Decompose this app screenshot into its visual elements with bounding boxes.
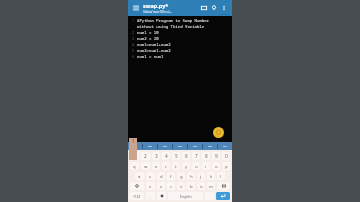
button[interactable]: l xyxy=(217,172,225,180)
button[interactable]: v xyxy=(177,182,185,190)
staticText: 1 xyxy=(132,18,135,23)
button[interactable] xyxy=(203,142,217,150)
staticText: num1 = 10 xyxy=(137,30,159,35)
button[interactable]: x xyxy=(157,182,165,190)
staticText: , xyxy=(150,193,152,199)
button[interactable]: h xyxy=(187,172,195,180)
button[interactable]: u xyxy=(192,162,200,170)
button[interactable] xyxy=(158,142,172,150)
staticText: p xyxy=(225,163,228,169)
staticText: 3 xyxy=(132,36,135,41)
button[interactable]: swap.py* xyxy=(143,2,199,14)
staticText: k xyxy=(210,173,213,179)
button[interactable]: p xyxy=(222,162,230,170)
staticText: without using Third Variable xyxy=(137,24,205,29)
button[interactable]: Run program xyxy=(213,127,224,138)
staticText: 5 xyxy=(175,153,178,160)
button[interactable]: w xyxy=(141,162,150,170)
button[interactable]: m xyxy=(207,182,215,190)
button[interactable]: ?123 xyxy=(130,192,144,200)
staticText: num1 = num1 xyxy=(137,54,164,59)
button[interactable]: 2 xyxy=(141,152,150,160)
staticText: q xyxy=(133,163,136,169)
button[interactable]: y xyxy=(182,162,190,170)
staticText: /data/user/0/ru.i... xyxy=(143,9,173,14)
staticText: i xyxy=(205,163,207,169)
staticText: 8 xyxy=(205,153,208,160)
button[interactable]: Open navigation menu xyxy=(131,3,141,13)
staticText: 3 xyxy=(155,153,158,160)
button[interactable]: Backspace xyxy=(217,182,230,190)
staticText: w xyxy=(144,163,148,169)
staticText: a xyxy=(138,173,141,179)
staticText: 1 xyxy=(132,138,135,145)
button[interactable]: g xyxy=(177,172,185,180)
button[interactable]: f xyxy=(167,172,175,180)
button[interactable]: b xyxy=(187,182,195,190)
button[interactable]: z xyxy=(146,182,155,190)
staticText: swap.py* xyxy=(143,2,169,9)
button[interactable]: n xyxy=(197,182,205,190)
button[interactable]: r xyxy=(162,162,170,170)
button[interactable]: t xyxy=(172,162,180,170)
button[interactable] xyxy=(188,142,202,150)
staticText: 6 xyxy=(185,153,188,160)
button[interactable] xyxy=(173,142,187,150)
button[interactable]: 7 xyxy=(192,152,200,160)
button[interactable]: 1 xyxy=(130,152,139,160)
staticText: s xyxy=(149,173,152,179)
staticText: 0 xyxy=(225,153,228,160)
button[interactable]: Save file xyxy=(199,3,209,13)
staticText: r xyxy=(165,163,167,169)
button[interactable]: 4 xyxy=(162,152,170,160)
button[interactable]: e xyxy=(152,162,160,170)
staticText: English xyxy=(180,194,192,199)
button[interactable]: 9 xyxy=(212,152,220,160)
button[interactable]: c xyxy=(167,182,175,190)
staticText: 4 xyxy=(132,42,135,47)
staticText: f xyxy=(170,173,172,179)
button[interactable]: 8 xyxy=(202,152,210,160)
button[interactable] xyxy=(143,142,157,150)
staticText: x xyxy=(160,183,163,189)
button[interactable]: . xyxy=(205,192,214,200)
staticText: d xyxy=(160,173,163,179)
staticText: 2 xyxy=(132,30,135,35)
button[interactable]: Suggestions xyxy=(209,3,219,13)
button[interactable]: 6 xyxy=(182,152,190,160)
button[interactable]: s xyxy=(146,172,155,180)
button[interactable]: , xyxy=(146,192,155,200)
button[interactable]: d xyxy=(157,172,165,180)
staticText: g xyxy=(180,173,183,179)
staticText: c xyxy=(170,183,173,189)
staticText: #Python Program to Swap Number xyxy=(137,18,209,23)
button[interactable]: j xyxy=(197,172,205,180)
button[interactable] xyxy=(128,142,142,150)
button[interactable]: 3 xyxy=(152,152,160,160)
staticText: num2 = 20 xyxy=(137,36,159,41)
button[interactable]: a xyxy=(135,172,144,180)
staticText: ?123 xyxy=(133,194,141,199)
button[interactable]: Change keyboard language xyxy=(157,192,166,200)
button[interactable]: q xyxy=(130,162,139,170)
staticText: n xyxy=(200,183,203,189)
button[interactable]: More options xyxy=(219,3,229,13)
button[interactable] xyxy=(218,142,232,150)
staticText: m xyxy=(209,183,214,189)
staticText: b xyxy=(190,183,193,189)
staticText: o xyxy=(215,163,218,169)
button[interactable]: Shift xyxy=(130,182,144,190)
staticText: z xyxy=(149,183,152,189)
staticText: 9 xyxy=(215,153,218,160)
button[interactable]: k xyxy=(207,172,215,180)
button[interactable]: i xyxy=(202,162,210,170)
button[interactable]: English xyxy=(168,192,203,200)
staticText: h xyxy=(190,173,193,179)
staticText: l xyxy=(220,173,222,179)
staticText: . xyxy=(209,193,211,199)
button[interactable]: Enter xyxy=(216,192,230,200)
staticText: 6 xyxy=(132,54,135,59)
button[interactable]: 0 xyxy=(222,152,230,160)
button[interactable]: 5 xyxy=(172,152,180,160)
button[interactable]: o xyxy=(212,162,220,170)
